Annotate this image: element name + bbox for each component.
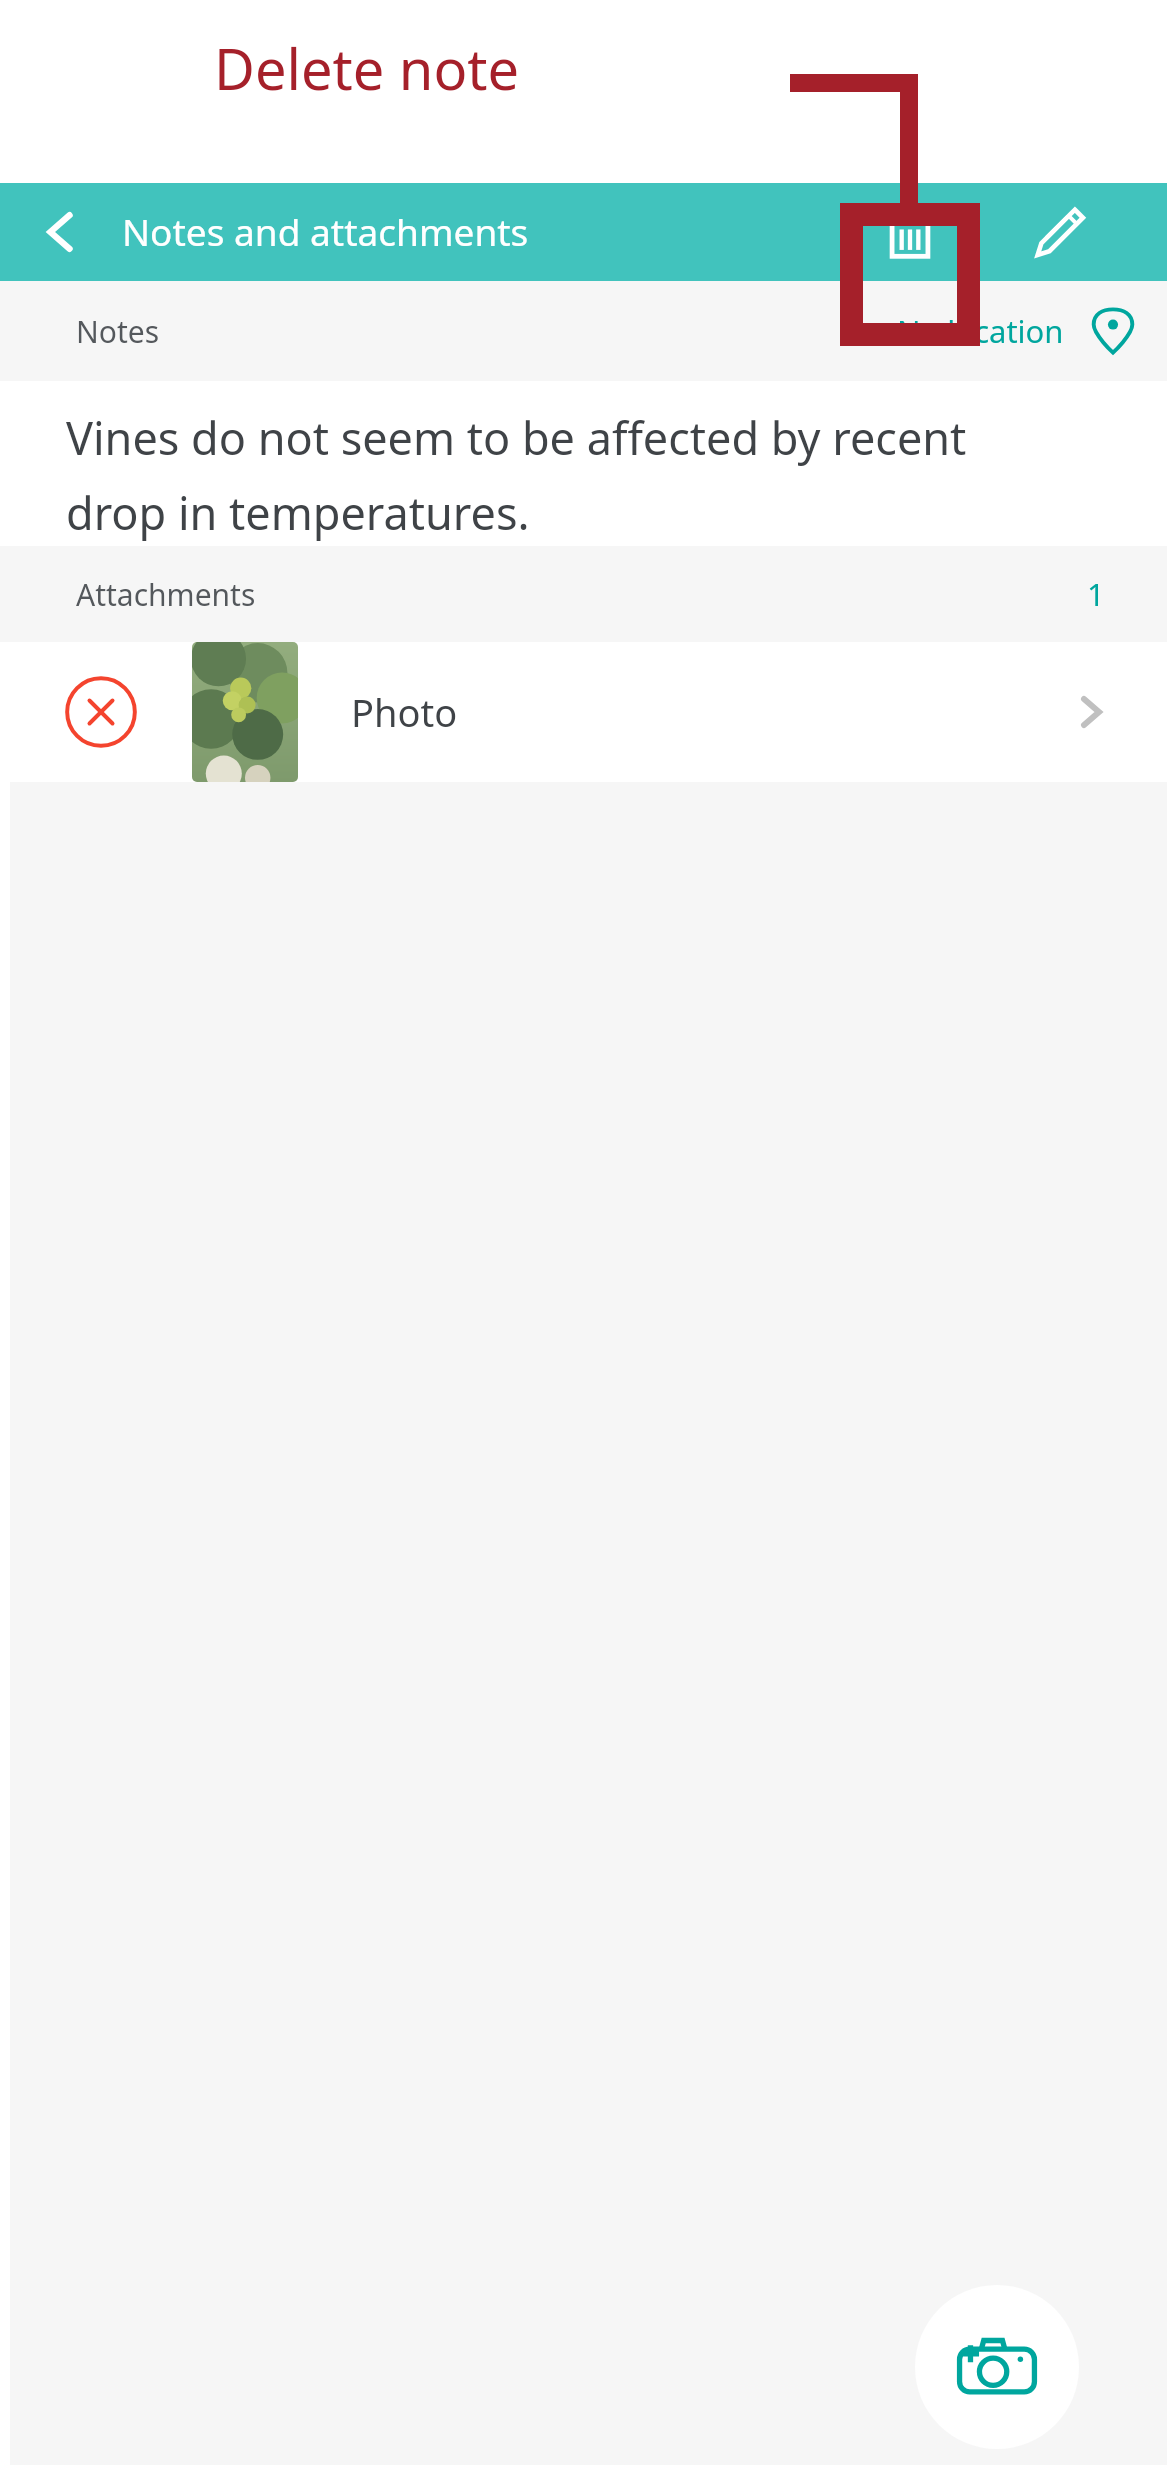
staticText: 1 xyxy=(1087,573,1105,615)
staticText: Attachments xyxy=(76,574,256,615)
button[interactable]: Edit xyxy=(1012,184,1108,280)
button[interactable]: Add photo xyxy=(915,2285,1079,2449)
staticText: Photo xyxy=(351,686,458,738)
staticText: No location xyxy=(897,310,1064,352)
button[interactable]: Back xyxy=(12,184,108,280)
other: Location xyxy=(1086,304,1140,358)
button[interactable]: Delete note xyxy=(862,184,958,280)
staticText: Vines do not seem to be affected by rece… xyxy=(66,407,1066,543)
staticText: Delete note xyxy=(214,30,520,106)
staticText: Notes xyxy=(76,311,160,352)
button[interactable]: Remove attachment xyxy=(0,642,1167,782)
staticText: Notes and attachments xyxy=(122,206,529,256)
button[interactable]: Remove attachment xyxy=(54,665,148,759)
